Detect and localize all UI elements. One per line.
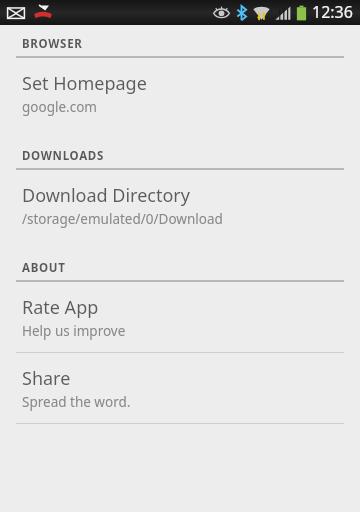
staticText: BROWSER [22,36,83,52]
staticText: Help us improve [22,322,126,340]
button[interactable]: Download Directory [0,170,360,240]
staticText: /storage/emulated/0/Download [22,210,223,228]
staticText: 12:36 [312,1,353,23]
staticText: ABOUT [22,260,66,276]
staticText: DOWNLOADS [22,148,104,164]
button[interactable]: Set Homepage [0,58,360,128]
staticText: Rate App [22,295,99,320]
staticText: Download Directory [22,183,190,208]
button[interactable]: Share [0,353,360,423]
staticText: Set Homepage [22,71,147,96]
staticText: google.com [22,98,97,116]
staticText: Share [22,366,71,391]
staticText: Spread the word. [22,393,131,411]
button[interactable]: Rate App [0,282,360,352]
